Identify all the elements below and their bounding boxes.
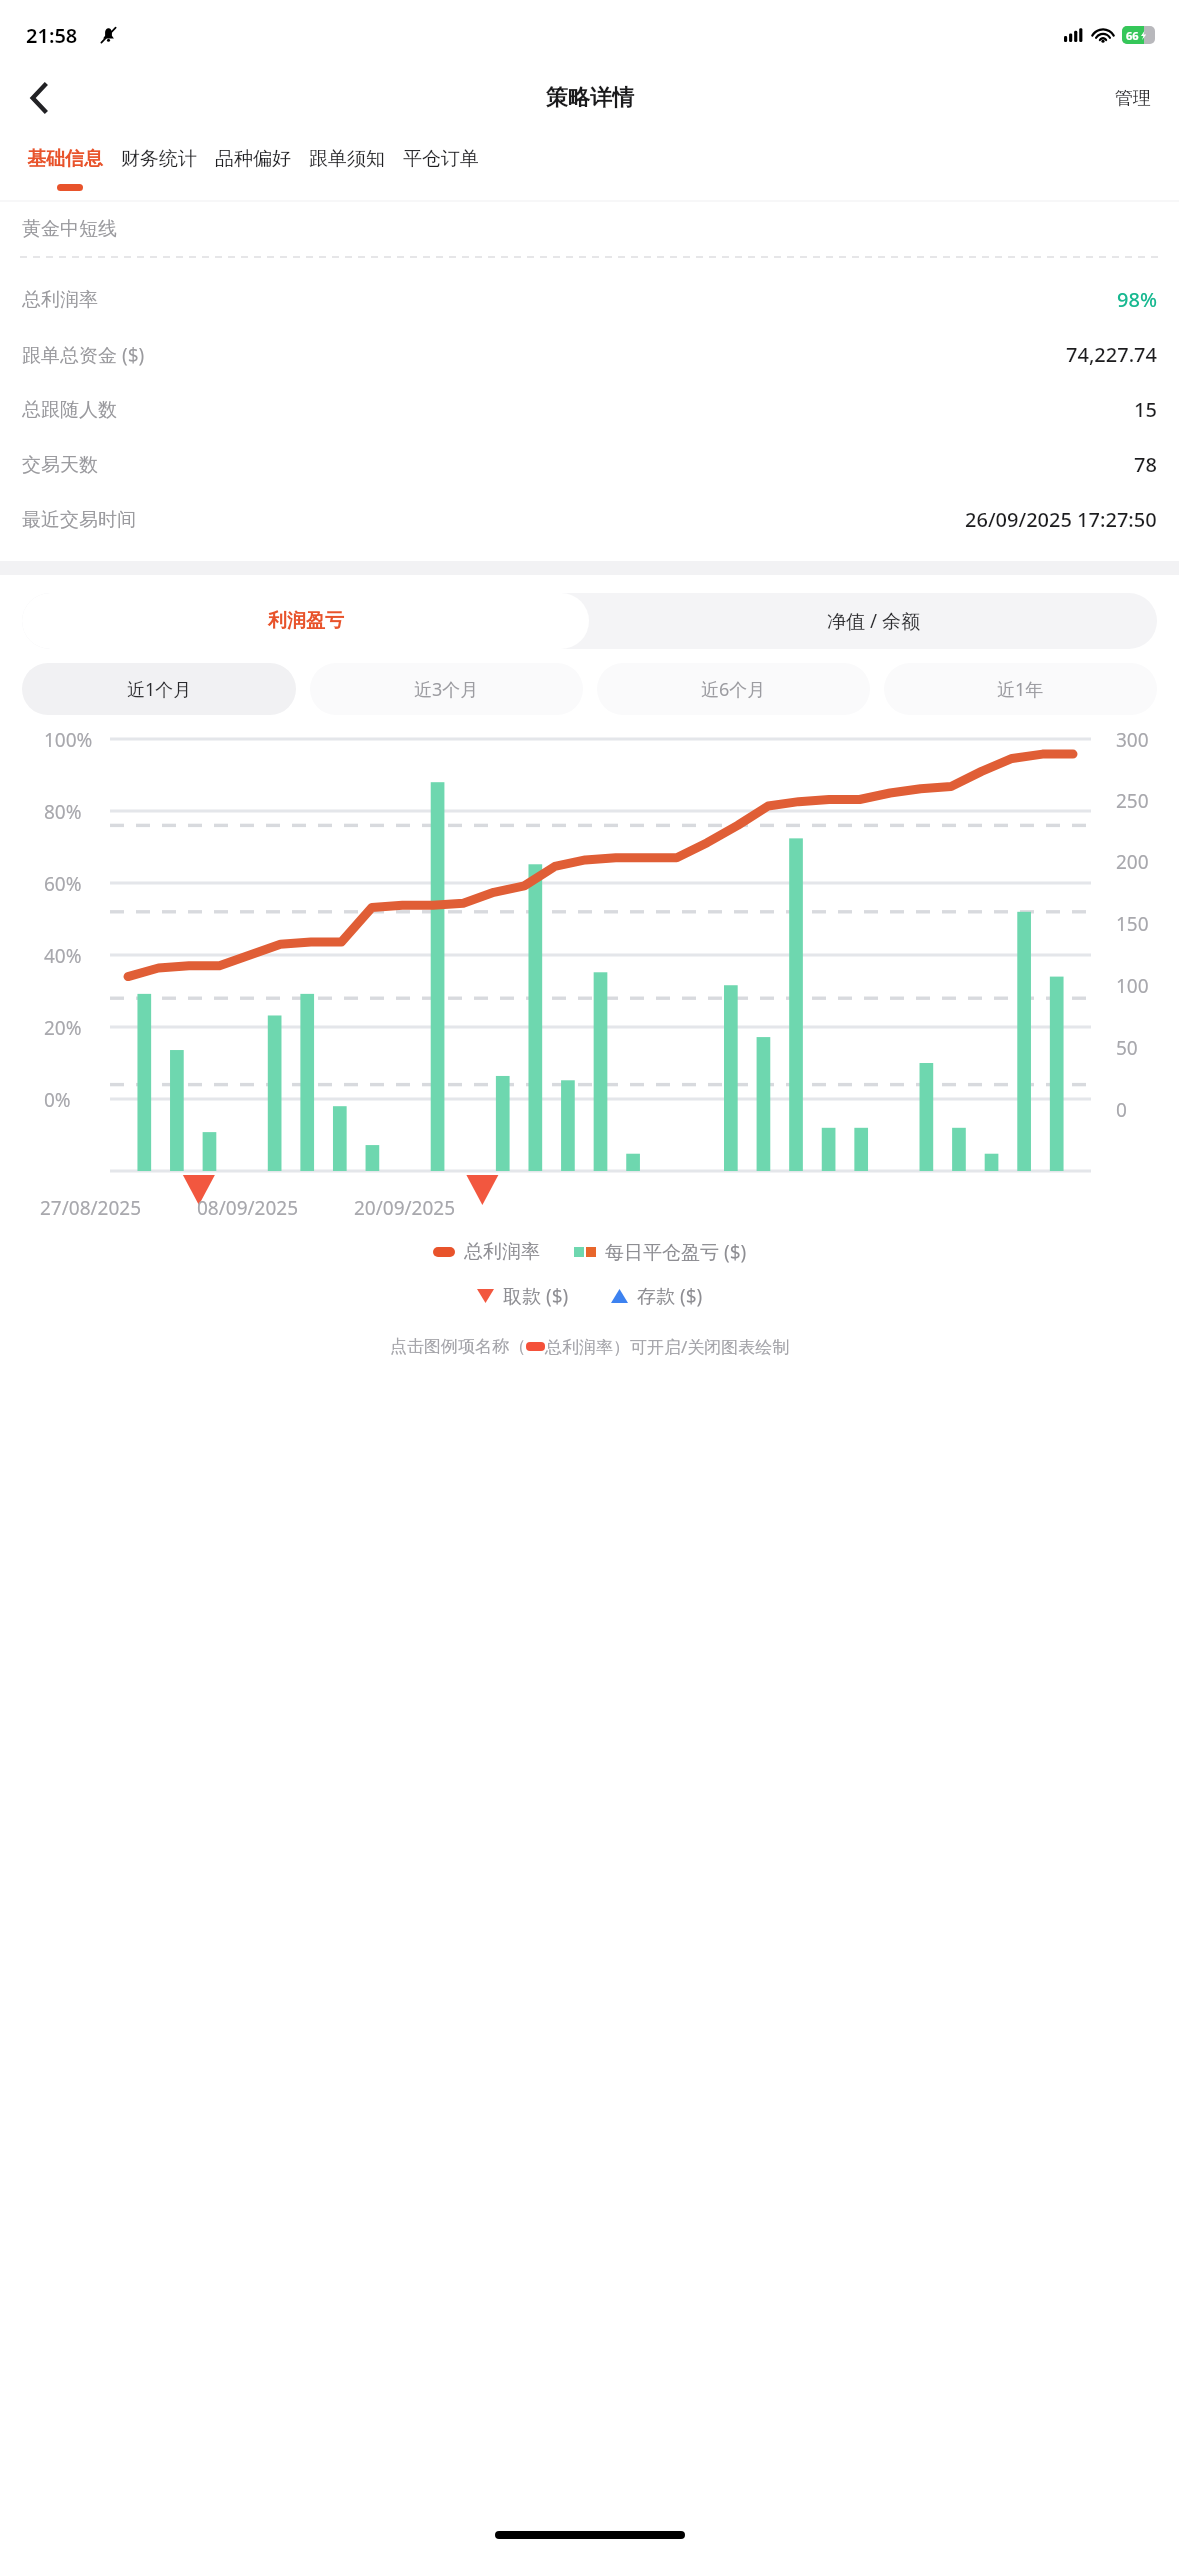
staticText: 0 — [1116, 1097, 1127, 1123]
staticText: 每日平仓盈亏 ($) — [605, 1239, 747, 1265]
staticText: 近6个月 — [701, 677, 766, 702]
staticText: 最近交易时间 — [22, 508, 136, 532]
staticText: 26/09/2025 17:27:50 — [965, 506, 1157, 533]
staticText: 80% — [44, 799, 82, 825]
staticText: 27/08/2025 — [40, 1195, 142, 1221]
button[interactable]: 总利润率 — [427, 1234, 546, 1270]
staticText: 15 — [1134, 396, 1157, 423]
button[interactable]: 取款 ($) — [471, 1277, 575, 1315]
staticText: 黄金中短线 — [22, 217, 117, 241]
staticText: 20% — [44, 1015, 82, 1041]
staticText: 近3个月 — [414, 677, 479, 702]
button[interactable]: 存款 ($) — [605, 1277, 709, 1315]
staticText: 0% — [44, 1087, 71, 1113]
staticText: 40% — [44, 943, 82, 969]
staticText: 20/09/2025 — [354, 1195, 456, 1221]
staticText: 点击图例项名称（ — [390, 1336, 526, 1357]
staticText: 利润盈亏 — [268, 609, 344, 633]
staticText: 净值 / 余额 — [827, 608, 920, 634]
button[interactable]: 财务统计 — [112, 141, 206, 177]
staticText: 100% — [44, 727, 93, 753]
button[interactable]: 每日平仓盈亏 ($) — [568, 1233, 753, 1271]
button[interactable]: 近1个月 — [22, 663, 296, 715]
staticText: 08/09/2025 — [197, 1195, 299, 1221]
staticText: 跟单总资金 ($) — [22, 342, 145, 368]
button[interactable]: 利润盈亏 — [22, 593, 589, 649]
staticText: 近1年 — [997, 677, 1044, 702]
button[interactable]: 基础信息 — [18, 141, 112, 177]
staticText: 总利润率）可开启/关闭图表绘制 — [545, 1335, 790, 1358]
staticText: 60% — [44, 871, 82, 897]
staticText: 取款 ($) — [503, 1283, 569, 1309]
staticText: 200 — [1116, 849, 1149, 875]
staticText: 平仓订单 — [403, 147, 479, 171]
button[interactable]: 平仓订单 — [394, 141, 488, 177]
staticText: 总利润率 — [464, 1240, 540, 1264]
staticText: 74,227.74 — [1066, 341, 1157, 368]
staticText: 交易天数 — [22, 453, 98, 477]
button[interactable]: 近1年 — [884, 663, 1157, 715]
button[interactable]: 近6个月 — [597, 663, 870, 715]
button[interactable]: 品种偏好 — [206, 141, 300, 177]
staticText: 品种偏好 — [215, 147, 291, 171]
staticText: 21:58 — [26, 22, 78, 49]
staticText: 基础信息 — [27, 147, 103, 171]
staticText: 存款 ($) — [637, 1283, 703, 1309]
staticText: 150 — [1116, 911, 1149, 937]
staticText: 近1个月 — [127, 677, 192, 702]
staticText: 78 — [1134, 451, 1157, 478]
staticText: 策略详情 — [546, 84, 634, 112]
button[interactable]: 近3个月 — [310, 663, 583, 715]
staticText: 250 — [1116, 788, 1149, 814]
staticText: 总跟随人数 — [22, 398, 117, 422]
button[interactable]: 净值 / 余额 — [589, 593, 1157, 649]
staticText: 财务统计 — [121, 147, 197, 171]
staticText: 98% — [1117, 286, 1157, 313]
staticText: 管理 — [1115, 87, 1151, 110]
staticText: 300 — [1116, 727, 1149, 753]
staticText: 50 — [1116, 1035, 1138, 1061]
staticText: 100 — [1116, 973, 1149, 999]
staticText: 66 — [1126, 28, 1139, 43]
staticText: 跟单须知 — [309, 147, 385, 171]
button[interactable]: Back — [12, 71, 66, 125]
button[interactable]: 跟单须知 — [300, 141, 394, 177]
button[interactable]: 管理 — [1107, 79, 1159, 118]
staticText: 总利润率 — [22, 288, 98, 312]
